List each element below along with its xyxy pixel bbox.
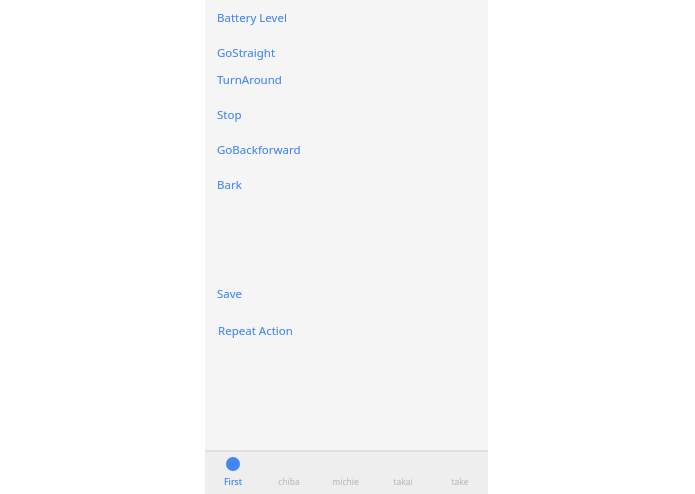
button[interactable]: GoStraight [205,37,488,66]
staticText: GoStraight [217,45,276,61]
staticText: Save [217,286,243,302]
staticText: take [451,476,469,488]
staticText: Bark [217,177,242,193]
staticText: takai [393,476,413,488]
staticText: GoBackforward [217,142,301,158]
button[interactable]: Stop [205,99,488,134]
button[interactable]: takai [374,452,431,494]
button[interactable]: GoBackforward [205,134,488,169]
staticText: First [224,476,242,488]
button[interactable]: Save [205,286,488,313]
button[interactable]: take [431,452,488,494]
staticText: Repeat Action [218,323,293,339]
staticText: Battery Level [217,10,287,26]
other: First tab icon [226,457,240,471]
button[interactable]: michie [317,452,374,494]
button[interactable]: chiba [261,452,317,494]
staticText: TurnAround [217,72,282,88]
button[interactable]: Repeat Action [205,313,488,347]
button[interactable]: Bark [205,169,488,204]
button[interactable]: First tab icon [205,452,261,494]
button[interactable]: TurnAround [205,66,488,99]
staticText: michie [332,476,359,488]
staticText: chiba [278,476,300,488]
staticText: Stop [217,107,242,123]
button[interactable]: Battery Level [205,0,488,37]
